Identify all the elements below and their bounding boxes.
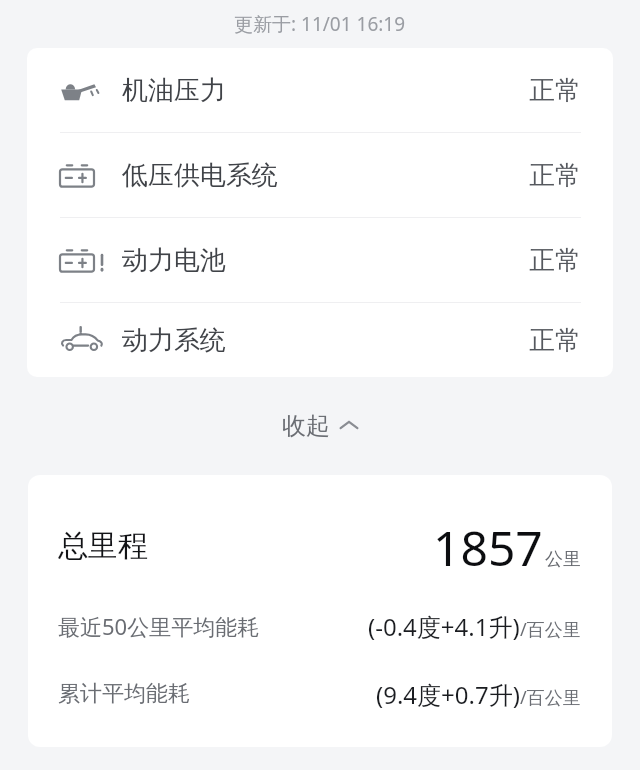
staticText: 动力系统	[122, 324, 226, 357]
staticText: /百公里	[520, 685, 581, 710]
staticText: 1857	[433, 515, 543, 577]
staticText: (-0.4度+4.1升)	[368, 610, 520, 643]
staticText: 公里	[545, 548, 581, 571]
staticText: /百公里	[520, 617, 581, 642]
staticText: (9.4度+0.7升)	[376, 678, 520, 711]
button[interactable]: 低压供电系统	[27, 133, 613, 218]
button[interactable]: 收起	[268, 403, 373, 449]
staticText: 正常	[529, 324, 581, 357]
staticText: 收起	[282, 411, 330, 441]
staticText: 最近50公里平均能耗	[58, 611, 260, 641]
staticText: 低压供电系统	[122, 159, 278, 192]
staticText: 正常	[529, 74, 581, 107]
button[interactable]: 动力电池	[27, 218, 613, 303]
staticText: 正常	[529, 159, 581, 192]
staticText: 正常	[529, 244, 581, 277]
staticText: 机油压力	[122, 74, 226, 107]
staticText: 更新于: 11/01 16:19	[234, 11, 406, 37]
button[interactable]: 机油压力	[27, 48, 613, 133]
staticText: 总里程	[58, 527, 148, 565]
staticText: 累计平均能耗	[58, 680, 190, 708]
button[interactable]: 动力系统	[27, 303, 613, 377]
staticText: 动力电池	[122, 244, 226, 277]
